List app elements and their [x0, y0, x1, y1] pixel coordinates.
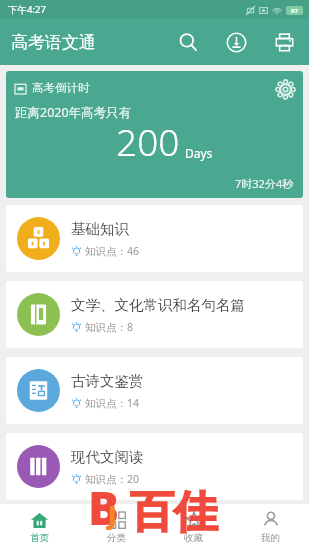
- button[interactable]: 首页: [0, 504, 78, 550]
- button[interactable]: 高考倒计时: [6, 71, 303, 198]
- button[interactable]: 收藏: [155, 504, 232, 550]
- staticText: 知识点：46: [85, 244, 140, 258]
- button[interactable]: Settings: [274, 78, 296, 100]
- button[interactable]: Search: [171, 25, 205, 59]
- staticText: 古诗文鉴赏: [71, 372, 144, 390]
- button[interactable]: 分类: [78, 504, 155, 550]
- staticText: 我的: [261, 532, 280, 544]
- staticText: 高考倒计时: [32, 81, 90, 95]
- button[interactable]: Download: [219, 25, 253, 59]
- button[interactable]: Print: [267, 25, 301, 59]
- staticText: 距离2020年高考只有: [15, 104, 132, 121]
- staticText: 首页: [30, 532, 49, 544]
- button[interactable]: 基础知识: [6, 205, 303, 272]
- staticText: 文学、文化常识和名句名篇: [71, 296, 245, 314]
- staticText: 分类: [107, 532, 126, 544]
- staticText: 百佳: [130, 485, 218, 540]
- staticText: 高考语文通: [11, 32, 96, 53]
- button[interactable]: 古诗文鉴赏: [6, 357, 303, 424]
- button[interactable]: 文学、文化常识和名句名篇: [6, 281, 303, 348]
- staticText: 下午4:27: [8, 3, 46, 16]
- button[interactable]: 我的: [232, 504, 309, 550]
- staticText: 现代文阅读: [71, 448, 144, 466]
- staticText: J: [108, 498, 117, 531]
- staticText: 7时32分4秒: [235, 176, 294, 191]
- staticText: 基础知识: [71, 220, 129, 238]
- staticText: B: [88, 476, 120, 539]
- button[interactable]: 现代文阅读: [6, 433, 303, 500]
- staticText: 200: [116, 116, 180, 166]
- staticText: 知识点：20: [85, 472, 140, 486]
- staticText: 收藏: [184, 532, 203, 544]
- staticText: 知识点：14: [85, 396, 140, 410]
- staticText: Days: [185, 145, 213, 161]
- staticText: 97: [291, 7, 298, 15]
- staticText: 知识点：8: [85, 320, 134, 334]
